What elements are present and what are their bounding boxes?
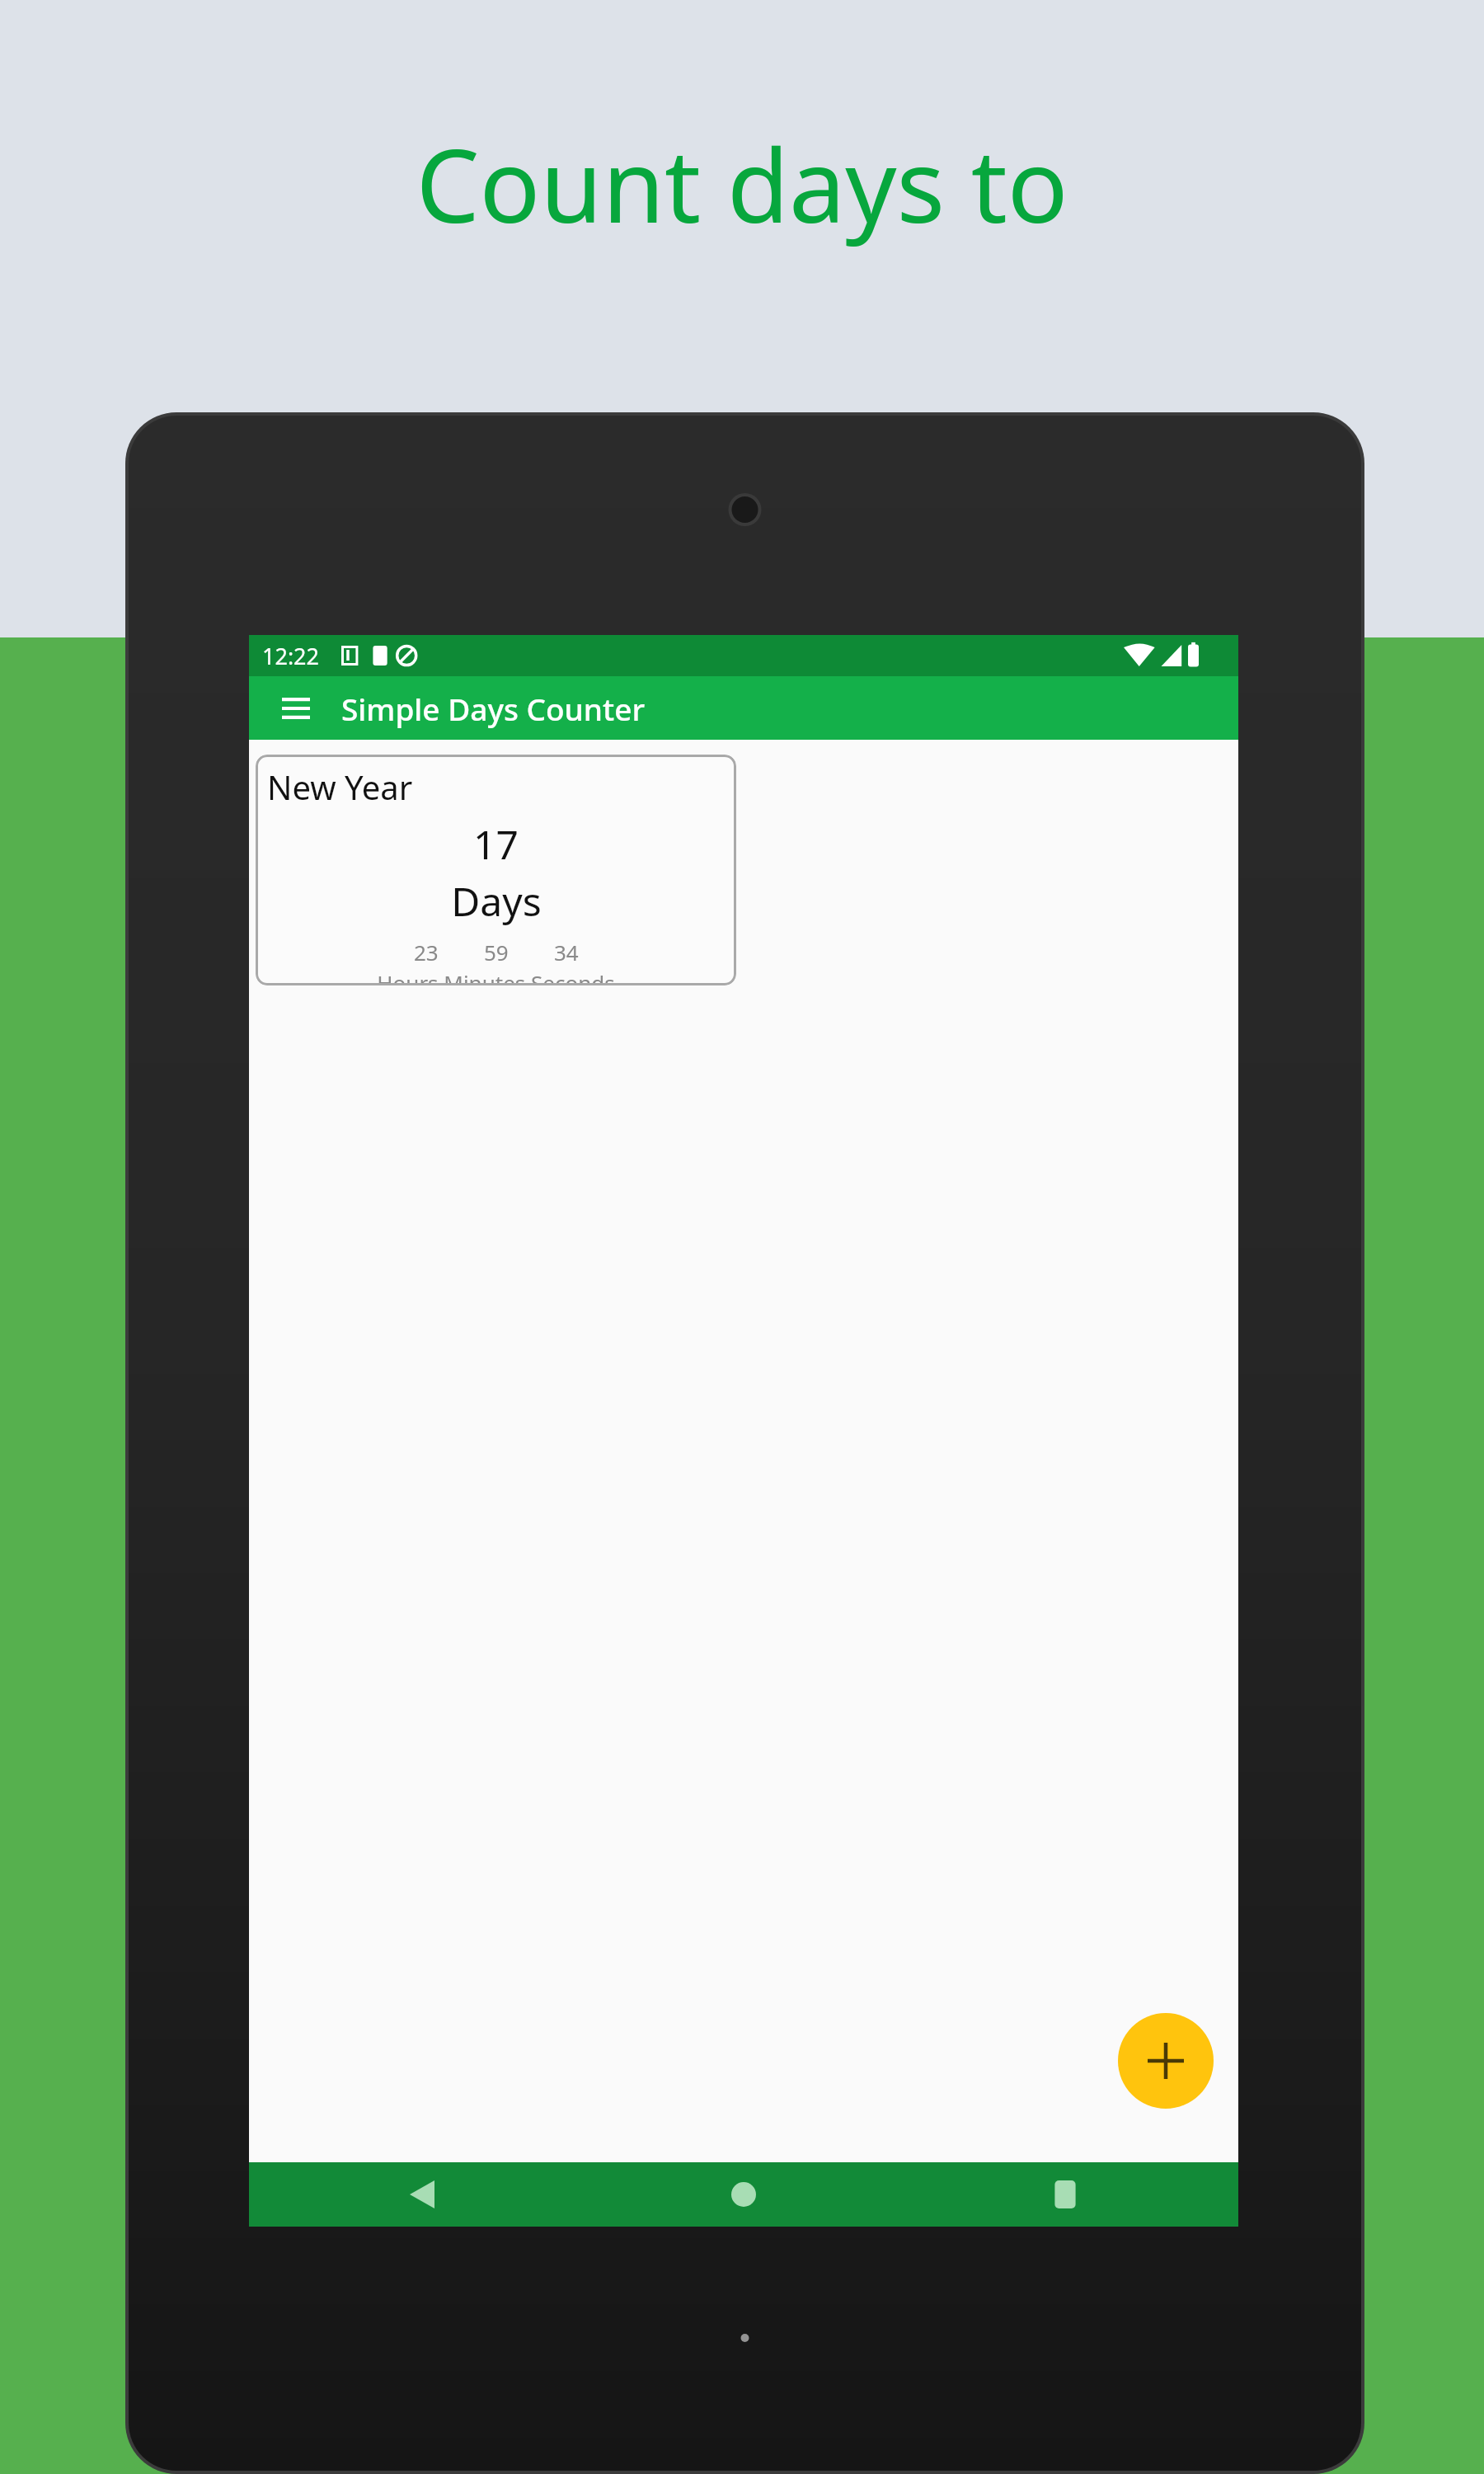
staticText: 34: [554, 938, 579, 967]
staticText: 59: [484, 938, 509, 967]
button[interactable]: Back: [383, 2162, 462, 2227]
staticText: Hours Minutes Seconds: [377, 968, 615, 985]
staticText: 12:22: [262, 641, 320, 671]
staticText: Count days to: [416, 115, 1068, 252]
button[interactable]: Home: [704, 2162, 783, 2227]
staticText: 17: [473, 817, 519, 871]
staticText: 23: [414, 938, 439, 967]
button[interactable]: Add new counter: [1118, 2013, 1214, 2109]
button[interactable]: New Year: [256, 755, 736, 985]
button[interactable]: Open navigation menu: [270, 683, 322, 734]
button[interactable]: Recent apps: [1026, 2162, 1105, 2227]
staticText: Simple Days Counter: [341, 688, 646, 729]
staticText: Days: [451, 874, 542, 928]
staticText: New Year: [267, 764, 413, 809]
